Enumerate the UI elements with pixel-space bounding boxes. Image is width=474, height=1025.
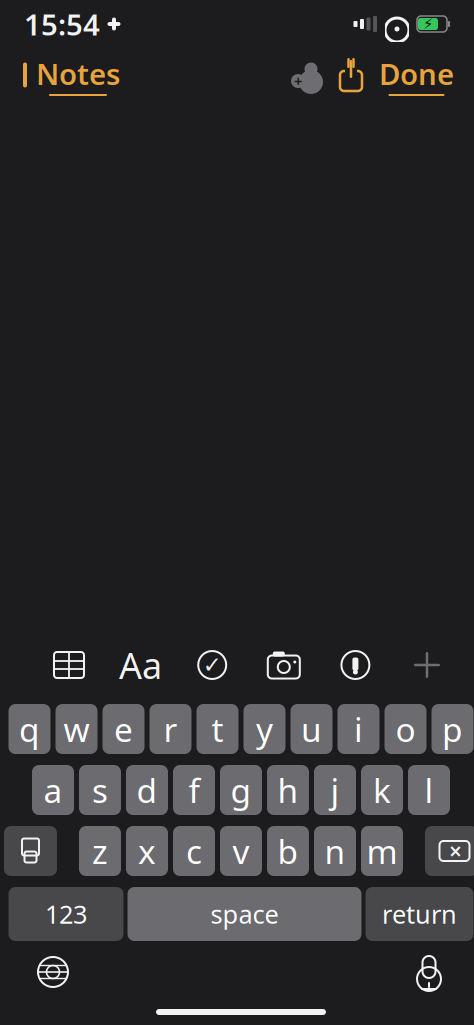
- staticText: k: [373, 768, 391, 812]
- staticText: t: [211, 707, 223, 751]
- button[interactable]: Table: [46, 643, 92, 687]
- button[interactable]: v: [220, 826, 262, 876]
- staticText: u: [301, 707, 322, 751]
- button[interactable]: e: [102, 704, 144, 754]
- staticText: m: [366, 829, 397, 873]
- staticText: n: [324, 829, 345, 873]
- button[interactable]: Checklist: [189, 643, 235, 687]
- staticText: return: [382, 897, 457, 931]
- staticText: Aa: [119, 641, 162, 689]
- button[interactable]: d: [126, 765, 168, 815]
- button[interactable]: n: [314, 826, 356, 876]
- button[interactable]: space: [127, 887, 361, 941]
- button[interactable]: a: [32, 765, 74, 815]
- button[interactable]: m: [361, 826, 403, 876]
- button[interactable]: j: [314, 765, 356, 815]
- button[interactable]: Add People: [285, 55, 329, 95]
- staticText: Done: [379, 54, 454, 93]
- button[interactable]: q: [8, 704, 50, 754]
- staticText: p: [442, 707, 463, 751]
- staticText: ✓: [203, 652, 222, 678]
- staticText: 123: [45, 897, 87, 931]
- staticText: ⚡︎: [423, 16, 433, 32]
- staticText: Notes: [36, 54, 120, 93]
- button[interactable]: z: [79, 826, 121, 876]
- staticText: e: [114, 707, 133, 751]
- button[interactable]: Format: [118, 643, 164, 687]
- button[interactable]: Camera: [261, 643, 307, 687]
- button[interactable]: Next Keyboard: [26, 949, 80, 995]
- staticText: s: [92, 768, 108, 812]
- button[interactable]: u: [290, 704, 332, 754]
- staticText: h: [277, 768, 298, 812]
- staticText: v: [232, 829, 249, 873]
- button[interactable]: h: [267, 765, 309, 815]
- staticText: c: [186, 829, 202, 873]
- button[interactable]: o: [384, 704, 426, 754]
- button[interactable]: w: [55, 704, 97, 754]
- button[interactable]: b: [267, 826, 309, 876]
- staticText: g: [230, 768, 251, 812]
- button[interactable]: r: [149, 704, 191, 754]
- button[interactable]: Close: [404, 643, 450, 687]
- button[interactable]: k: [361, 765, 403, 815]
- button[interactable]: s: [79, 765, 121, 815]
- button[interactable]: Markup: [332, 643, 378, 687]
- button[interactable]: l: [408, 765, 450, 815]
- staticText: j: [330, 768, 339, 812]
- button[interactable]: Share: [329, 55, 373, 95]
- staticText: b: [277, 829, 298, 873]
- staticText: w: [63, 707, 89, 751]
- button[interactable]: c: [173, 826, 215, 876]
- staticText: 15:54: [24, 4, 100, 43]
- button[interactable]: Done: [373, 48, 460, 102]
- staticText: ×: [449, 836, 462, 866]
- button[interactable]: t: [196, 704, 238, 754]
- button[interactable]: Delete: [425, 826, 474, 876]
- staticText: x: [138, 829, 156, 873]
- staticText: y: [256, 707, 273, 751]
- button[interactable]: y: [243, 704, 285, 754]
- staticText: +: [294, 71, 302, 91]
- staticText: space: [210, 897, 278, 931]
- staticText: r: [163, 707, 177, 751]
- button[interactable]: x: [126, 826, 168, 876]
- button[interactable]: 123: [8, 887, 123, 941]
- staticText: d: [136, 768, 157, 812]
- staticText: i: [354, 707, 363, 751]
- staticText: f: [188, 768, 199, 812]
- staticText: o: [395, 707, 415, 751]
- button[interactable]: Notes: [14, 48, 124, 102]
- button[interactable]: Dictate: [402, 949, 456, 995]
- staticText: a: [43, 768, 62, 812]
- button[interactable]: return: [365, 887, 473, 941]
- button[interactable]: i: [337, 704, 379, 754]
- staticText: z: [92, 829, 108, 873]
- button[interactable]: f: [173, 765, 215, 815]
- staticText: l: [424, 768, 433, 812]
- button[interactable]: Shift: [4, 826, 57, 876]
- button[interactable]: g: [220, 765, 262, 815]
- staticText: q: [19, 707, 40, 751]
- button[interactable]: p: [431, 704, 473, 754]
